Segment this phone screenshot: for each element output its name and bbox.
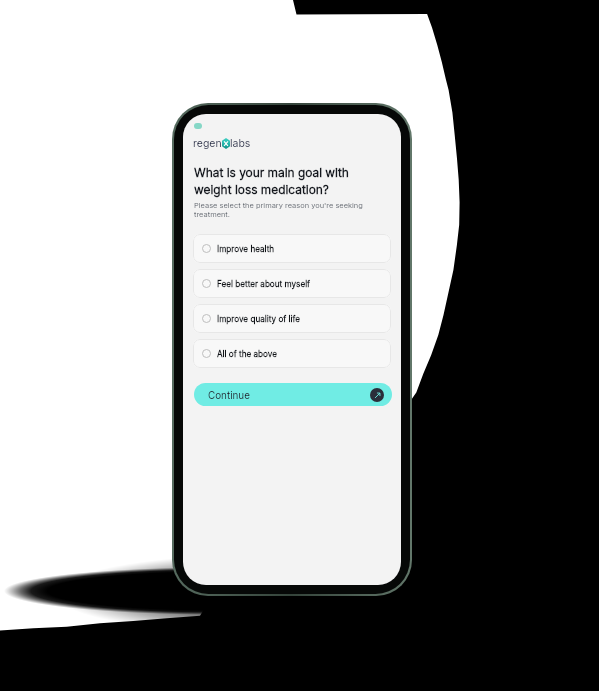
other: Continue: [370, 388, 384, 402]
button[interactable]: All of the above: [193, 339, 391, 368]
staticText: regen: [193, 137, 222, 150]
button[interactable]: Improve quality of life: [193, 304, 391, 333]
button[interactable]: Feel better about myself: [193, 269, 391, 298]
staticText: Improve quality of life: [217, 314, 301, 324]
staticText: All of the above: [217, 349, 277, 359]
staticText: Continue: [208, 389, 250, 401]
staticText: Improve health: [217, 244, 275, 254]
button[interactable]: Continue: [194, 383, 392, 406]
staticText: Feel better about myself: [217, 279, 311, 289]
staticText: What is your main goal with weight loss …: [194, 164, 349, 198]
button[interactable]: Improve health: [193, 234, 391, 263]
staticText: labs: [230, 137, 251, 150]
staticText: Please select the primary reason you're …: [194, 200, 369, 218]
